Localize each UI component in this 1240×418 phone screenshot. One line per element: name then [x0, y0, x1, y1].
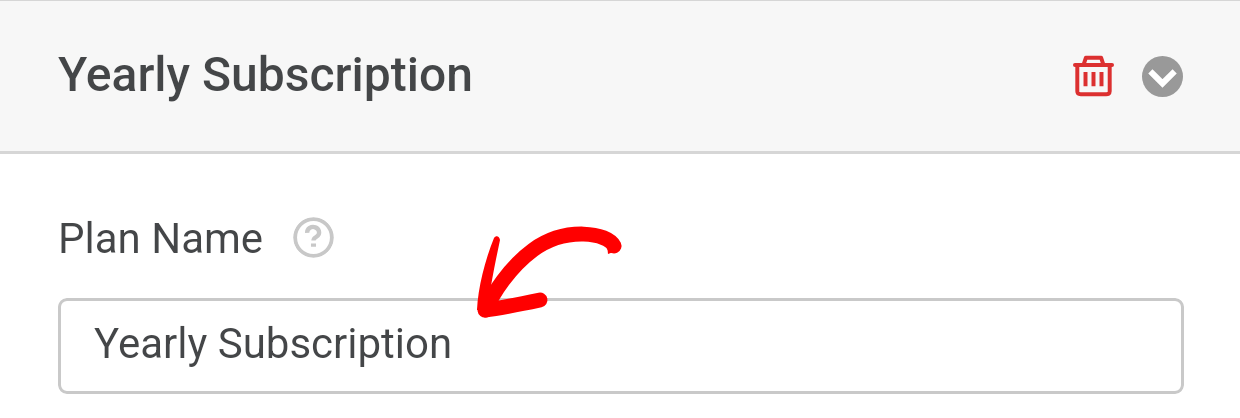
staticText: Yearly Subscription [94, 319, 453, 368]
button[interactable]: Yearly Subscription [58, 298, 1184, 394]
staticText: Plan Name [58, 214, 264, 263]
button[interactable]: Delete plan [1057, 39, 1129, 111]
button[interactable]: Collapse section [1142, 56, 1183, 97]
button[interactable]: Help about plan name [293, 217, 334, 258]
staticText: Yearly Subscription [58, 46, 473, 102]
